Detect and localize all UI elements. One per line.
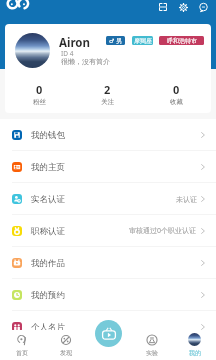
staticText: ID 4 — [61, 49, 74, 58]
button[interactable]: ♂ 男 — [106, 36, 125, 45]
button[interactable]: Profile photo — [15, 33, 50, 68]
button[interactable]: Messages — [196, 0, 210, 14]
button[interactable]: 我的作品 — [0, 247, 216, 279]
button[interactable]: 实验 — [130, 330, 173, 360]
button[interactable]: 职称认证 — [0, 215, 216, 247]
staticText: 我的预约 — [31, 290, 65, 301]
button[interactable]: 我的钱包 — [0, 119, 216, 151]
button[interactable]: 0 — [5, 82, 73, 106]
button[interactable]: Settings — [176, 0, 190, 14]
button[interactable]: 我的主页 — [0, 151, 216, 183]
staticText: 关注 — [101, 98, 114, 106]
staticText: 0 — [173, 82, 180, 97]
staticText: 呼和浩特市 — [167, 37, 197, 45]
staticText: 粉丝 — [33, 98, 46, 106]
staticText: 很懒，没有简介 — [61, 57, 110, 66]
button[interactable]: 个人名片 — [0, 311, 216, 343]
button[interactable]: 首页 — [0, 330, 44, 360]
staticText: ♂ 男 — [109, 37, 122, 45]
staticText: 摩羯座 — [134, 37, 152, 45]
staticText: 发现 — [60, 349, 72, 357]
staticText: 收藏 — [170, 98, 183, 106]
staticText: 未认证 — [176, 195, 197, 204]
button[interactable]: 摩羯座 — [132, 36, 153, 45]
staticText: 首页 — [16, 349, 28, 357]
button[interactable]: 我的 — [173, 330, 216, 360]
staticText: 实验 — [146, 349, 158, 357]
staticText: 我的作品 — [31, 258, 65, 269]
staticText: 我的主页 — [31, 162, 65, 173]
staticText: 我的钱包 — [31, 130, 65, 141]
button[interactable]: 我的预约 — [0, 279, 216, 311]
staticText: 0 — [36, 82, 43, 97]
staticText: 个人名片 — [31, 322, 65, 333]
button[interactable]: 实名认证 — [0, 183, 216, 215]
button[interactable]: 2 — [73, 82, 142, 106]
button[interactable]: Scan QR code — [156, 0, 170, 14]
staticText: 职称认证 — [31, 226, 65, 237]
staticText: 审核通过0个职业认证 — [129, 226, 197, 236]
staticText: Airon — [59, 35, 90, 51]
button[interactable]: 0 — [142, 82, 211, 106]
button[interactable]: 呼和浩特市 — [159, 36, 204, 45]
staticText: 实名认证 — [31, 194, 65, 205]
button[interactable]: 发现 — [44, 330, 87, 360]
button[interactable]: 发布 — [95, 320, 122, 350]
staticText: 我的 — [189, 349, 201, 357]
staticText: 2 — [104, 82, 111, 97]
